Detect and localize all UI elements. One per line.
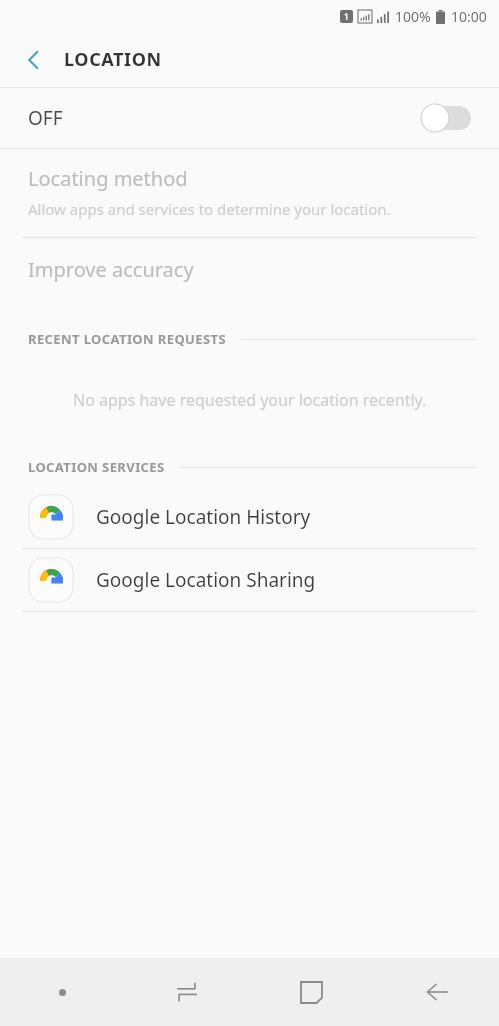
button[interactable]: Locating method: [0, 149, 499, 237]
staticText: LOCATION: [64, 47, 162, 72]
button[interactable]: Google Location Sharing: [0, 549, 499, 611]
button[interactable]: Improve accuracy: [0, 238, 499, 300]
staticText: Google Location History: [96, 504, 311, 530]
button[interactable]: Back: [374, 958, 499, 1026]
staticText: RECENT LOCATION REQUESTS: [28, 330, 227, 348]
staticText: Improve accuracy: [28, 256, 194, 283]
staticText: No apps have requested your location rec…: [73, 389, 427, 411]
button[interactable]: Back: [14, 40, 54, 80]
button[interactable]: OFF: [0, 88, 499, 148]
staticText: LOCATION SERVICES: [28, 458, 165, 476]
button[interactable]: Recent apps: [124, 958, 249, 1026]
staticText: Allow apps and services to determine you…: [28, 199, 391, 219]
staticText: Locating method: [28, 165, 188, 192]
button[interactable]: Menu: [0, 958, 124, 1026]
button[interactable]: Home: [249, 958, 374, 1026]
staticText: 100%: [395, 7, 431, 26]
staticText: Google Location Sharing: [96, 567, 316, 593]
button[interactable]: Google Location History: [0, 486, 499, 548]
staticText: 10:00: [451, 7, 487, 26]
staticText: OFF: [28, 105, 63, 131]
